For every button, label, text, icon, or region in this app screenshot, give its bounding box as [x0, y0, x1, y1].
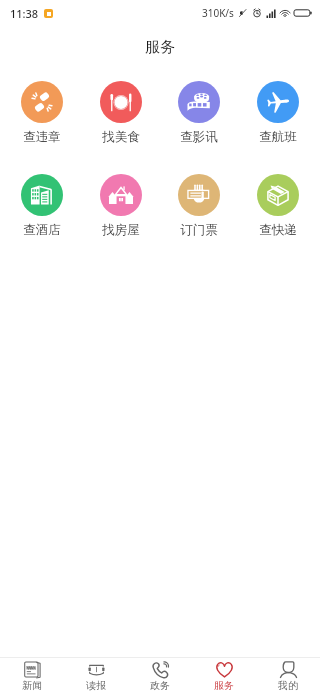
button[interactable]: 查酒店 [6, 174, 78, 238]
staticText: 订门票 [180, 222, 218, 238]
button[interactable]: 我的 [256, 660, 320, 692]
button[interactable]: 找房屋 [85, 174, 157, 238]
staticText: 查违章 [23, 129, 61, 145]
staticText: 查快递 [259, 222, 297, 238]
button[interactable]: 订门票 [163, 174, 235, 238]
button[interactable]: 找美食 [85, 81, 157, 145]
staticText: 11:38 [10, 6, 39, 21]
button[interactable]: 读报 [64, 660, 128, 692]
button[interactable]: 查违章 [6, 81, 78, 145]
staticText: 服务 [145, 38, 175, 57]
button[interactable]: 政务 [128, 660, 192, 692]
button[interactable]: 查影讯 [163, 81, 235, 145]
button[interactable]: 服务 [192, 660, 256, 692]
staticText: 找美食 [102, 129, 140, 145]
staticText: 找房屋 [102, 222, 140, 238]
staticText: 政务 [150, 679, 170, 692]
button[interactable]: 查快递 [242, 174, 314, 238]
staticText: 查酒店 [23, 222, 61, 238]
staticText: 查影讯 [180, 129, 218, 145]
staticText: 310K/s [202, 6, 234, 20]
staticText: 新闻 [22, 679, 42, 692]
staticText: 我的 [278, 679, 298, 692]
staticText: 查航班 [259, 129, 297, 145]
staticText: 读报 [86, 679, 106, 692]
button[interactable]: 新闻 [0, 660, 64, 692]
button[interactable]: 查航班 [242, 81, 314, 145]
staticText: 服务 [214, 679, 234, 692]
